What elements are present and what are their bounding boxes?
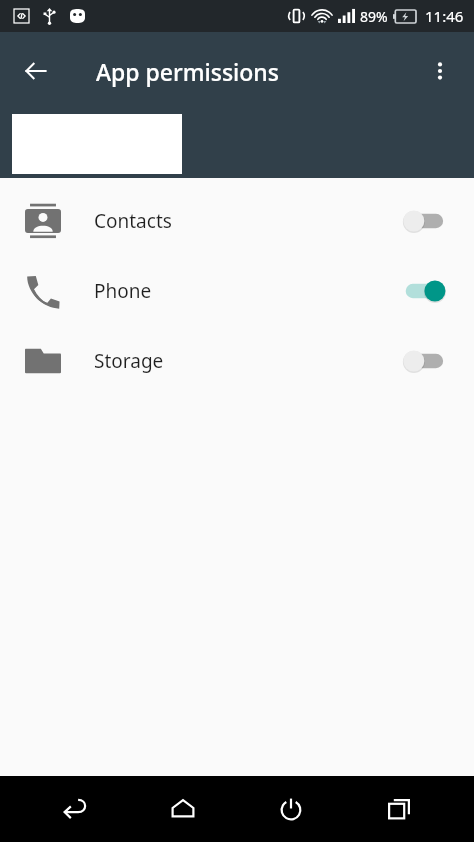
button[interactable]: Back	[12, 47, 60, 95]
button[interactable]: Home	[150, 776, 216, 842]
button[interactable]: Phone	[0, 256, 474, 326]
button[interactable]: Toggle on	[398, 276, 446, 306]
button[interactable]: Storage	[0, 326, 474, 396]
staticText: Storage	[94, 348, 164, 374]
staticText: 89%	[360, 7, 388, 26]
staticText: 11:46	[425, 6, 464, 26]
button[interactable]: Back	[42, 776, 108, 842]
button[interactable]: Toggle off	[398, 206, 446, 236]
button[interactable]: Toggle off	[398, 346, 446, 376]
staticText: Phone	[94, 278, 152, 304]
staticText: App permissions	[96, 56, 279, 87]
button[interactable]: Contacts	[0, 186, 474, 256]
button[interactable]: Recent apps	[366, 776, 432, 842]
button[interactable]: More options	[416, 47, 464, 95]
staticText: Contacts	[94, 208, 172, 234]
button[interactable]: Power	[258, 776, 324, 842]
